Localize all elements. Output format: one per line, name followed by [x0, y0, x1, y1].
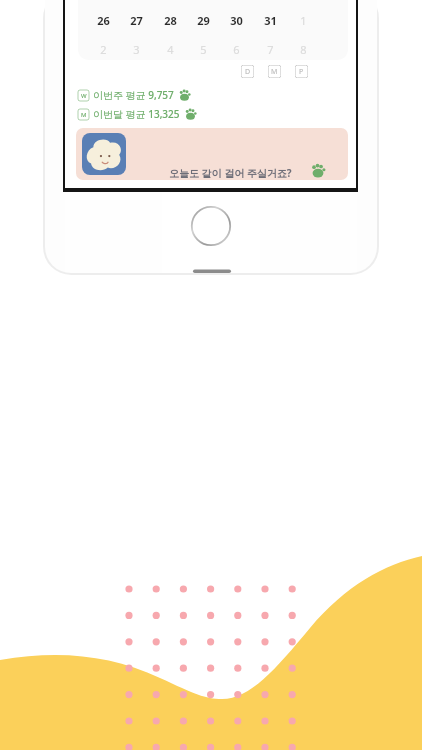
staticText: 2 — [100, 42, 107, 57]
staticText: 1 — [300, 13, 307, 28]
staticText: 27 — [130, 13, 143, 28]
staticText: 28 — [164, 13, 177, 28]
staticText: 26 — [97, 13, 110, 28]
button[interactable]: P — [295, 65, 308, 78]
staticText: P — [299, 67, 304, 77]
staticText: M — [271, 67, 278, 77]
staticText: 3 — [133, 42, 140, 57]
staticText: 31 — [264, 13, 277, 28]
staticText: 30 — [230, 13, 243, 28]
button[interactable]: W — [78, 87, 191, 103]
staticText: W — [81, 92, 87, 100]
staticText: D — [245, 67, 251, 77]
button[interactable]: D — [241, 65, 254, 78]
staticText: 29 — [197, 13, 210, 28]
staticText: 6 — [233, 42, 240, 57]
staticText: M — [81, 111, 87, 119]
staticText: 이번달 평균 13,325 — [93, 107, 180, 121]
button[interactable]: M — [78, 106, 197, 122]
staticText: 5 — [200, 42, 207, 57]
button[interactable]: M — [268, 65, 281, 78]
button[interactable]: 오늘도 같이 걸어 주실거죠? — [76, 128, 348, 180]
staticText: 이번주 평균 9,757 — [93, 88, 174, 102]
staticText: 오늘도 같이 걸어 주실거죠? — [169, 166, 292, 180]
staticText: 8 — [300, 42, 307, 57]
staticText: 4 — [167, 42, 174, 57]
staticText: 7 — [267, 42, 274, 57]
